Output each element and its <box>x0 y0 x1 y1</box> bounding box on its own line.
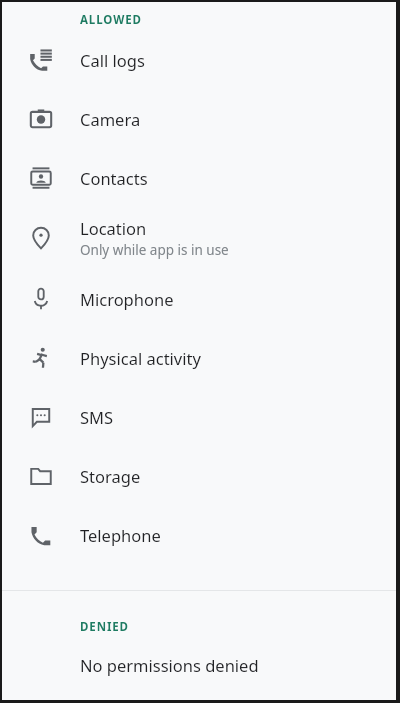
button[interactable]: SMS <box>2 387 396 446</box>
staticText: Physical activity <box>80 347 201 369</box>
staticText: Location <box>80 217 147 239</box>
staticText: Microphone <box>80 288 174 310</box>
button[interactable]: Camera <box>2 89 396 148</box>
button[interactable]: Contacts <box>2 148 396 207</box>
button[interactable]: No permissions denied <box>2 637 396 693</box>
staticText: Telephone <box>80 524 161 546</box>
button[interactable]: Physical activity <box>2 328 396 387</box>
staticText: Storage <box>80 465 141 487</box>
staticText: SMS <box>80 406 114 428</box>
button[interactable]: Call logs <box>2 30 396 89</box>
button[interactable]: Location <box>2 207 396 269</box>
button[interactable]: Telephone <box>2 505 396 564</box>
staticText: Only while app is in use <box>80 241 229 259</box>
staticText: DENIED <box>80 619 129 635</box>
staticText: Contacts <box>80 167 148 189</box>
staticText: Camera <box>80 108 141 130</box>
staticText: ALLOWED <box>80 12 142 28</box>
staticText: Call logs <box>80 49 145 71</box>
button[interactable]: Storage <box>2 446 396 505</box>
button[interactable]: Microphone <box>2 269 396 328</box>
staticText: No permissions denied <box>80 654 259 676</box>
